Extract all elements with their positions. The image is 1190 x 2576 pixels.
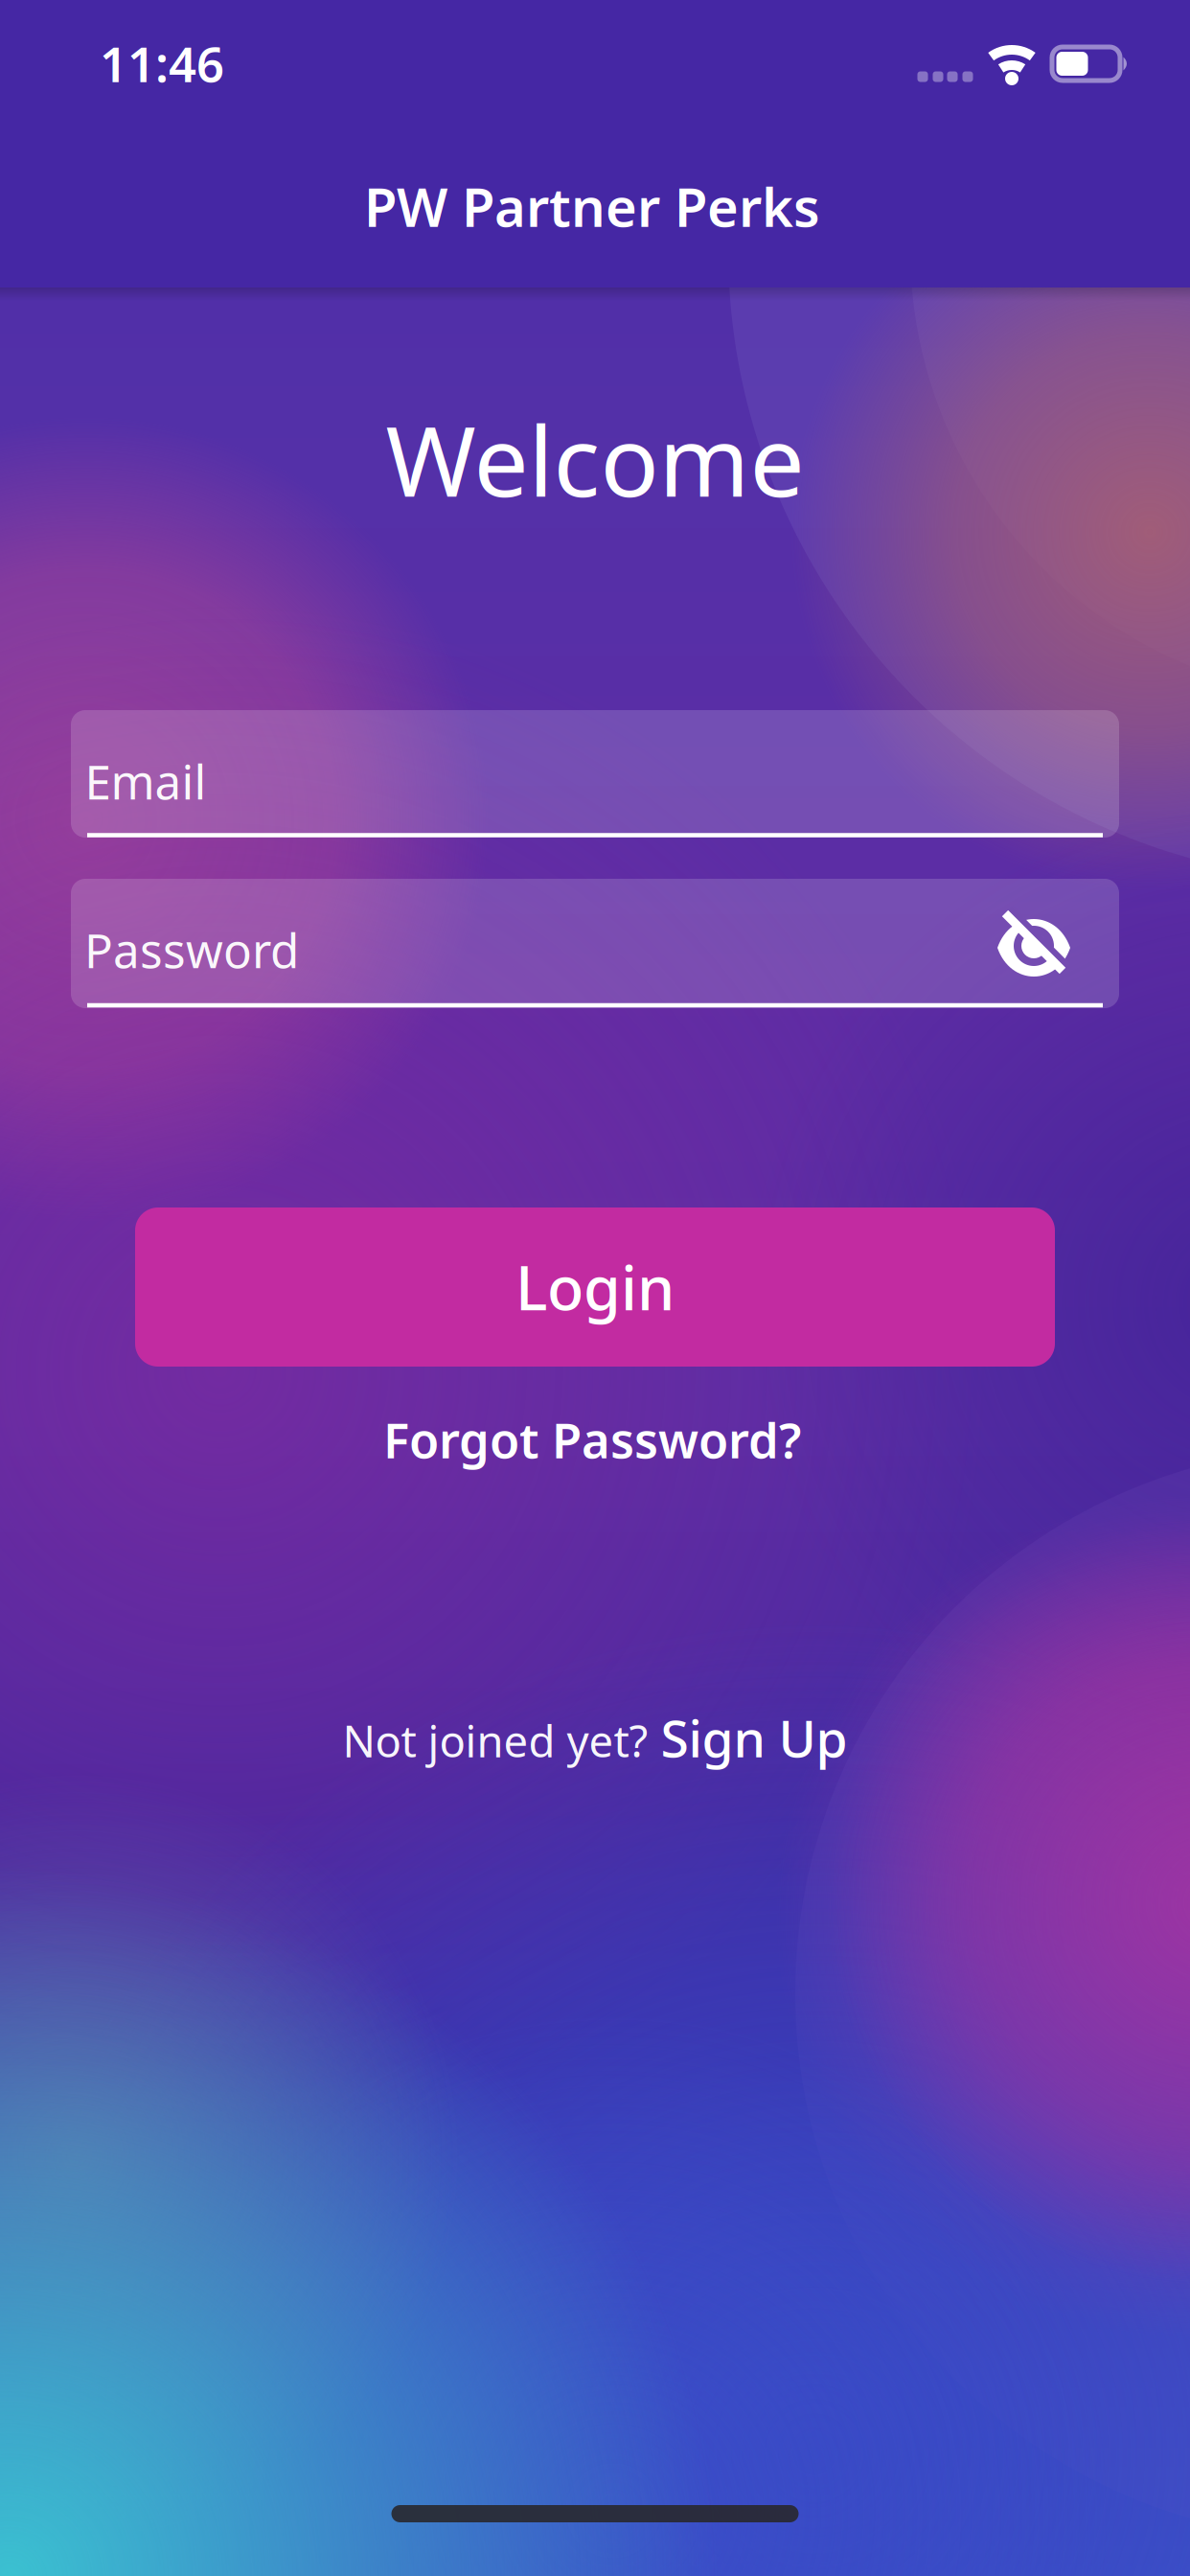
staticText: Sign Up (661, 1704, 847, 1771)
staticText: Email (85, 750, 206, 812)
staticText: PW Partner Perks (364, 170, 820, 242)
staticText: Login (515, 1247, 675, 1327)
button[interactable]: Sign Up (661, 1704, 847, 1771)
staticText: Welcome (386, 395, 804, 524)
button[interactable] (988, 900, 1080, 992)
staticText: Password (84, 918, 299, 981)
staticText: 11:46 (100, 31, 224, 96)
button[interactable]: Login (135, 1207, 1055, 1367)
button[interactable]: Email (71, 710, 1119, 838)
staticText: Not joined yet? (343, 1712, 648, 1769)
button[interactable]: Password (71, 879, 1119, 1008)
staticText: Forgot Password? (383, 1407, 801, 1472)
button[interactable]: Forgot Password? (383, 1407, 801, 1472)
